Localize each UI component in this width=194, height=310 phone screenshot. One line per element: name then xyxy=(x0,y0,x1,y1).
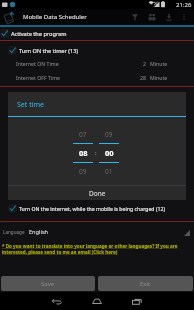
staticText: Save xyxy=(41,280,55,288)
staticText: 01 xyxy=(105,167,113,176)
button[interactable]: * Do you want to translate into your lan… xyxy=(2,243,192,255)
staticText: Internet ON Time xyxy=(16,60,59,67)
staticText: Minute xyxy=(150,74,170,81)
staticText: Done xyxy=(89,189,106,198)
button[interactable]: Turn ON the timer (13) xyxy=(0,45,194,56)
staticText: 09 xyxy=(79,167,87,176)
staticText: Turn ON the timer (13) xyxy=(19,47,79,55)
staticText: : xyxy=(95,149,97,157)
staticText: Exit xyxy=(140,280,151,288)
staticText: * Do you want to translate into your lan… xyxy=(2,243,192,255)
button[interactable]: Contacts xyxy=(143,9,160,25)
staticText: Internet OFF Time xyxy=(16,74,61,81)
staticText: Language xyxy=(3,229,25,235)
button[interactable]: Done xyxy=(8,186,186,200)
staticText: English xyxy=(29,228,49,236)
staticText: Activate the program xyxy=(11,30,67,38)
staticText: 08 xyxy=(79,148,88,158)
button[interactable]: Exit xyxy=(98,276,193,291)
staticText: 00 xyxy=(105,148,114,158)
button[interactable]: Filter xyxy=(126,9,143,25)
staticText: 21:26 xyxy=(176,1,192,9)
staticText: Turn ON the internet, while the mobile i… xyxy=(19,205,165,212)
button[interactable]: Turn ON the internet, while the mobile i… xyxy=(0,202,194,214)
button[interactable]: Internet OFF Time xyxy=(0,70,194,84)
button[interactable]: Save xyxy=(1,276,95,291)
button[interactable]: Back xyxy=(45,292,69,310)
staticText: 09 xyxy=(105,130,113,139)
staticText: 07 xyxy=(79,130,87,139)
staticText: Minute xyxy=(150,60,170,67)
staticText: Set time xyxy=(17,100,44,110)
staticText: 28 xyxy=(136,74,146,81)
button[interactable]: Recents xyxy=(125,292,149,310)
button[interactable]: Language xyxy=(0,222,194,239)
button[interactable]: Download xyxy=(160,9,177,25)
staticText: 2 xyxy=(136,60,146,67)
button[interactable]: More options xyxy=(177,9,190,25)
button[interactable]: 09 xyxy=(99,130,119,176)
button[interactable]: Home xyxy=(85,292,109,310)
button[interactable]: Activate the program xyxy=(0,27,194,40)
staticText: Mobile Data Scheduler xyxy=(23,13,87,21)
button[interactable]: Internet ON Time xyxy=(0,56,194,70)
button[interactable]: 07 xyxy=(73,130,93,176)
